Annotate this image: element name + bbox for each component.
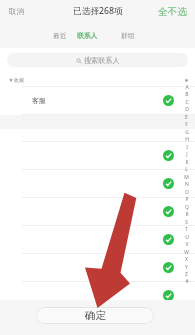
button[interactable]: 确定	[36, 307, 154, 324]
button[interactable]	[0, 170, 195, 198]
staticText: G	[185, 129, 189, 136]
staticText: 已选择268项	[73, 5, 123, 17]
staticText: 最近	[53, 31, 67, 40]
button[interactable]	[0, 142, 195, 170]
staticText: S	[185, 219, 188, 226]
staticText: P	[185, 196, 189, 203]
staticText: Y	[185, 264, 188, 271]
staticText: C	[185, 99, 189, 106]
staticText: R	[185, 211, 189, 218]
staticText: 群组	[121, 31, 135, 40]
button[interactable]	[0, 198, 195, 226]
staticText: W	[184, 249, 189, 256]
staticText: E	[185, 114, 188, 121]
staticText: L	[185, 166, 188, 173]
staticText: V	[185, 241, 189, 248]
staticText: Q	[185, 204, 189, 211]
staticText: I	[186, 144, 188, 151]
staticText: 全不选	[158, 6, 187, 18]
staticText: H	[185, 136, 189, 143]
button[interactable]	[0, 254, 195, 282]
button[interactable]	[0, 282, 195, 310]
button[interactable]: 全不选	[155, 4, 190, 20]
staticText: J	[186, 151, 188, 158]
staticText: M	[184, 174, 189, 181]
staticText: 客服	[32, 96, 46, 105]
button[interactable]: 客服	[0, 87, 195, 115]
staticText: N	[185, 181, 189, 188]
staticText: X	[185, 256, 188, 263]
button[interactable]	[0, 129, 195, 142]
button[interactable]: 群组	[119, 30, 137, 41]
staticText: K	[185, 159, 189, 166]
staticText: O	[185, 189, 189, 196]
button[interactable]: 搜索联系人	[7, 53, 188, 67]
staticText: U	[185, 234, 189, 241]
staticText: 收藏	[14, 77, 24, 83]
button[interactable]: 取消	[6, 5, 27, 18]
staticText: A	[185, 84, 189, 91]
staticText: ★	[184, 77, 189, 83]
staticText: 搜索联系人	[84, 56, 120, 65]
staticText: T	[185, 226, 188, 233]
staticText: Z	[185, 271, 188, 278]
staticText: 联系人	[77, 31, 98, 40]
staticText: D	[185, 106, 189, 113]
button[interactable]	[0, 226, 195, 254]
staticText: F	[185, 121, 188, 128]
staticText: 取消	[9, 7, 24, 16]
staticText: B	[185, 91, 189, 98]
staticText: 确定	[85, 309, 106, 322]
staticText: #	[185, 278, 189, 285]
button[interactable]: 最近	[51, 30, 69, 41]
button[interactable]: 联系人	[75, 30, 100, 41]
